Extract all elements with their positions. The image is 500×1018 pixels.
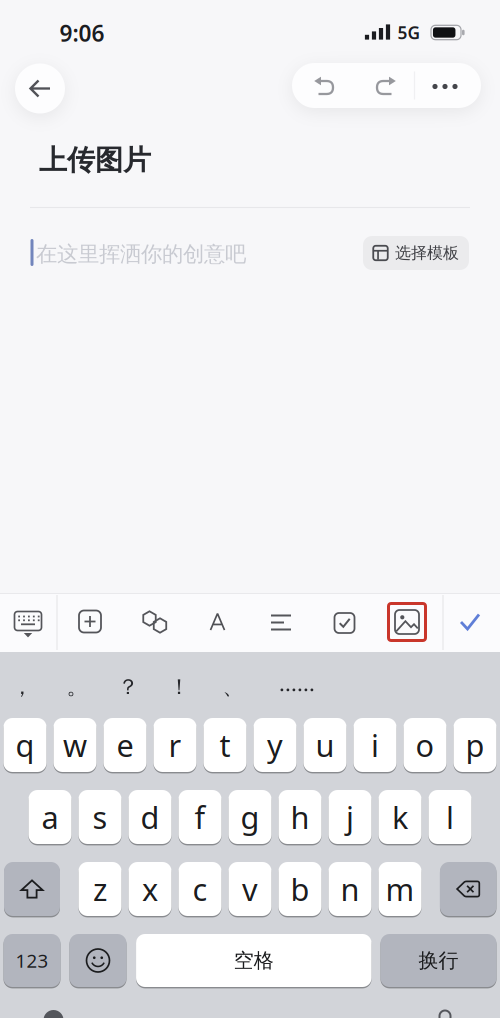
button[interactable]: Shift bbox=[4, 862, 60, 916]
button[interactable]: Done bbox=[446, 595, 494, 649]
button[interactable]: o bbox=[403, 718, 446, 772]
button[interactable]: Components bbox=[130, 595, 178, 649]
button[interactable]: b bbox=[278, 862, 321, 916]
button[interactable]: 换行 bbox=[380, 934, 496, 987]
button[interactable]: Emoji bbox=[69, 934, 126, 987]
button[interactable]: Redo bbox=[364, 64, 408, 109]
button[interactable]: j bbox=[328, 790, 371, 844]
button[interactable]: Undo bbox=[302, 64, 346, 109]
button[interactable]: i bbox=[353, 718, 396, 772]
staticText: r bbox=[168, 725, 181, 765]
button[interactable]: t bbox=[203, 718, 246, 772]
staticText: a bbox=[41, 797, 58, 837]
button[interactable]: ？ bbox=[111, 667, 145, 707]
staticText: z bbox=[93, 869, 107, 909]
staticText: c bbox=[192, 869, 207, 909]
staticText: o bbox=[415, 725, 434, 765]
button[interactable]: n bbox=[328, 862, 371, 916]
button[interactable]: a bbox=[28, 790, 71, 844]
staticText: ？ bbox=[117, 674, 138, 700]
button[interactable]: 选择模板 bbox=[363, 236, 469, 270]
staticText: 123 bbox=[15, 948, 48, 973]
staticText: 。 bbox=[66, 674, 87, 700]
staticText: e bbox=[116, 725, 133, 765]
button[interactable]: ， bbox=[5, 667, 39, 707]
button[interactable]: c bbox=[178, 862, 221, 916]
staticText: x bbox=[142, 869, 158, 909]
staticText: ， bbox=[11, 674, 32, 700]
staticText: m bbox=[385, 869, 414, 909]
button[interactable]: 空格 bbox=[136, 934, 372, 987]
button[interactable]: r bbox=[153, 718, 196, 772]
staticText: w bbox=[63, 725, 87, 765]
button[interactable]: x bbox=[128, 862, 171, 916]
staticText: 5G bbox=[397, 21, 420, 44]
button[interactable]: d bbox=[128, 790, 171, 844]
button[interactable]: h bbox=[278, 790, 321, 844]
button[interactable]: Text style bbox=[193, 595, 241, 649]
button[interactable]: q bbox=[3, 718, 46, 772]
staticText: s bbox=[92, 797, 107, 837]
button[interactable]: f bbox=[178, 790, 221, 844]
staticText: 9:06 bbox=[59, 18, 104, 48]
button[interactable]: More bbox=[421, 64, 473, 109]
button[interactable]: Delete bbox=[440, 862, 496, 916]
staticText: h bbox=[290, 797, 309, 837]
staticText: k bbox=[392, 797, 408, 837]
button[interactable]: p bbox=[453, 718, 496, 772]
button[interactable]: 123 bbox=[3, 934, 60, 987]
button[interactable]: g bbox=[228, 790, 271, 844]
button[interactable]: m bbox=[378, 862, 421, 916]
staticText: b bbox=[290, 869, 309, 909]
staticText: p bbox=[465, 725, 484, 765]
button[interactable]: e bbox=[103, 718, 146, 772]
staticText: 换行 bbox=[418, 948, 458, 973]
staticText: d bbox=[140, 797, 159, 837]
button[interactable]: Paragraph format bbox=[257, 595, 305, 649]
staticText: j bbox=[346, 797, 354, 837]
staticText: 、 bbox=[222, 674, 243, 700]
staticText: v bbox=[242, 869, 258, 909]
button[interactable]: Hide keyboard bbox=[3, 596, 53, 650]
staticText: ！ bbox=[168, 674, 189, 700]
staticText: 上传图片 bbox=[39, 143, 151, 177]
button[interactable]: u bbox=[303, 718, 346, 772]
staticText: q bbox=[15, 725, 34, 765]
staticText: t bbox=[219, 725, 230, 765]
staticText: l bbox=[446, 797, 454, 837]
staticText: g bbox=[240, 797, 259, 837]
button[interactable]: Checklist bbox=[320, 596, 368, 650]
staticText: i bbox=[371, 725, 379, 765]
staticText: f bbox=[194, 797, 205, 837]
button[interactable]: Ellipsis bbox=[275, 670, 319, 710]
button[interactable]: v bbox=[228, 862, 271, 916]
staticText: 选择模板 bbox=[395, 243, 459, 263]
button[interactable]: Back bbox=[15, 63, 65, 113]
staticText: n bbox=[340, 869, 359, 909]
button[interactable]: 、 bbox=[216, 667, 250, 707]
staticText: 空格 bbox=[234, 948, 274, 973]
button[interactable]: Insert block bbox=[66, 594, 114, 648]
button[interactable]: ！ bbox=[162, 667, 196, 707]
button[interactable]: k bbox=[378, 790, 421, 844]
button[interactable]: y bbox=[253, 718, 296, 772]
staticText: u bbox=[315, 725, 334, 765]
staticText: 在这里挥洒你的创意吧 bbox=[36, 241, 246, 267]
staticText: y bbox=[267, 725, 283, 765]
button[interactable]: z bbox=[78, 862, 121, 916]
button[interactable]: Insert image bbox=[383, 595, 431, 649]
button[interactable]: w bbox=[53, 718, 96, 772]
button[interactable]: l bbox=[428, 790, 471, 844]
button[interactable]: s bbox=[78, 790, 121, 844]
button[interactable]: 。 bbox=[60, 667, 94, 707]
